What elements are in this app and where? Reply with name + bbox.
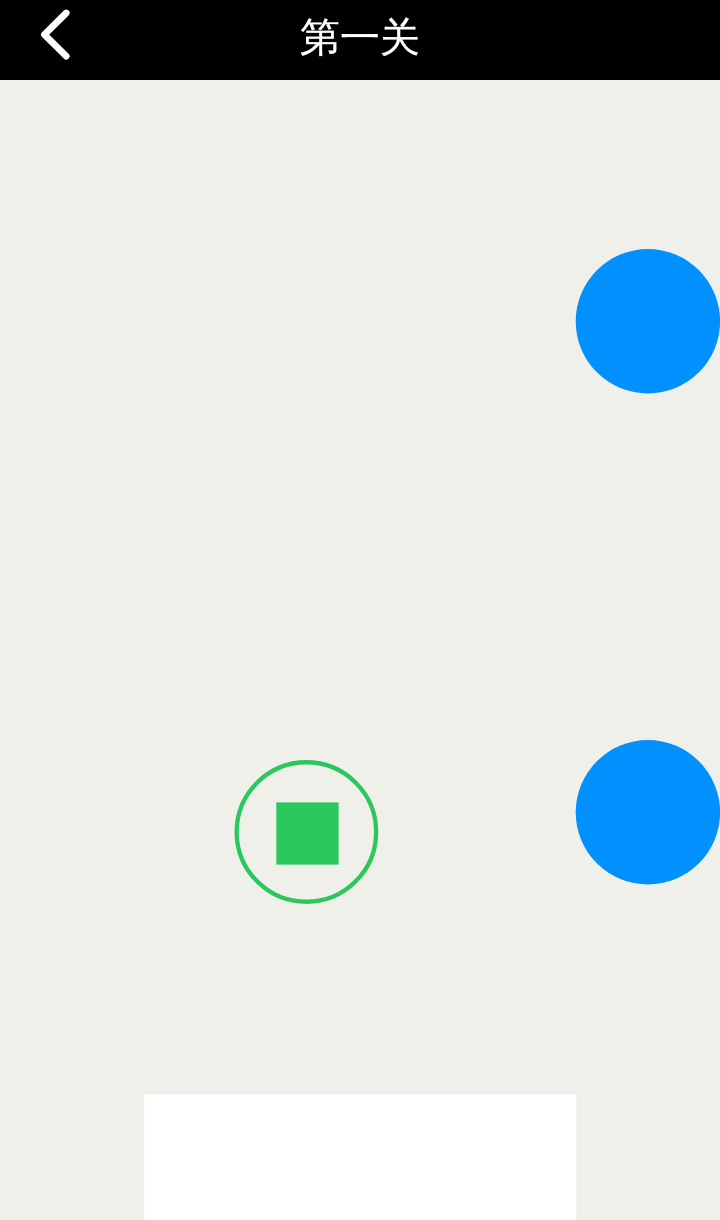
- button[interactable]: Blue node 2: [576, 740, 720, 884]
- staticText: 第一关: [300, 12, 420, 62]
- button[interactable]: Green block slot: [234, 760, 378, 904]
- button[interactable]: Blue node 1: [576, 249, 720, 393]
- button[interactable]: Back: [0, 0, 80, 80]
